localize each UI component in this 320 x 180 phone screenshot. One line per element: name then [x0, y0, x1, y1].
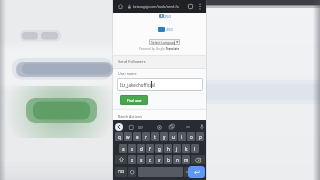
button[interactable]: r	[142, 132, 150, 141]
button[interactable]: u	[169, 132, 177, 141]
button[interactable]: c	[146, 155, 154, 164]
staticText: a	[122, 146, 125, 152]
staticText: s	[131, 146, 134, 152]
button[interactable]	[186, 126, 190, 128]
staticText: Find user	[127, 98, 142, 103]
button[interactable]: d	[137, 144, 145, 153]
staticText: d	[140, 146, 143, 152]
staticText: j	[176, 146, 178, 152]
button[interactable]: w	[124, 132, 132, 141]
staticText: x	[140, 157, 143, 163]
staticText: n	[176, 157, 179, 163]
staticText: f	[149, 146, 151, 152]
staticText: ?123	[118, 170, 125, 174]
button[interactable]: v	[155, 155, 163, 164]
staticText: u	[172, 134, 175, 140]
staticText: Select Language	[151, 40, 175, 45]
button[interactable]	[157, 125, 162, 130]
button[interactable]: n	[173, 155, 181, 164]
button[interactable]: g	[155, 144, 163, 153]
button[interactable]: Select Language	[149, 39, 180, 45]
staticText: Powered by	[139, 47, 156, 51]
button[interactable]	[191, 155, 205, 164]
button[interactable]: f	[146, 144, 154, 153]
staticText: m	[184, 157, 189, 163]
staticText: c	[149, 157, 152, 163]
button[interactable]: m	[182, 155, 190, 164]
button[interactable]: h	[164, 144, 172, 153]
button[interactable]	[129, 125, 134, 130]
button[interactable]: ?123	[115, 167, 127, 177]
staticText: q	[118, 134, 121, 140]
button[interactable]: q	[115, 132, 123, 141]
button[interactable]: Find user	[120, 95, 148, 105]
staticText: b	[167, 157, 170, 163]
staticText: i	[181, 134, 183, 140]
button[interactable]: t	[151, 132, 159, 141]
button[interactable]: e	[133, 132, 141, 141]
button[interactable]: y	[160, 132, 168, 141]
button[interactable]: s	[128, 144, 136, 153]
staticText: GIF	[138, 126, 144, 130]
button[interactable]	[115, 123, 123, 131]
staticText: Translate	[165, 47, 180, 51]
button[interactable]: t	[159, 14, 164, 18]
button[interactable]: i	[178, 132, 186, 141]
staticText: h	[167, 146, 170, 152]
button[interactable]	[188, 4, 193, 9]
staticText: Batch Actions	[118, 114, 143, 119]
staticText: Go gle	[156, 47, 165, 51]
staticText: t	[161, 14, 163, 18]
staticText: o	[190, 134, 193, 140]
staticText: w	[126, 134, 130, 140]
button[interactable]: j	[173, 144, 181, 153]
button[interactable]	[128, 167, 136, 177]
staticText: z	[131, 157, 134, 163]
button[interactable]	[199, 3, 201, 10]
staticText: 250	[166, 27, 173, 32]
button[interactable]	[184, 167, 189, 177]
button[interactable]: p	[196, 132, 204, 141]
button[interactable]: o	[187, 132, 195, 141]
staticText: y	[163, 134, 166, 140]
staticText: l	[194, 146, 196, 152]
staticText: t	[154, 134, 156, 140]
button[interactable]: l	[191, 144, 199, 153]
button[interactable]	[158, 27, 165, 32]
staticText: p	[199, 134, 202, 140]
staticText: 250	[164, 14, 171, 18]
staticText: r	[145, 134, 147, 140]
button[interactable]: x	[137, 155, 145, 164]
staticText: Send Followers	[118, 59, 146, 64]
staticText: v	[158, 157, 161, 163]
button[interactable]: Itz_jakechofficial	[117, 78, 203, 91]
staticText: Itz_jakechofficial	[120, 82, 155, 88]
staticText: k	[185, 146, 188, 152]
button[interactable]: z	[128, 155, 136, 164]
button[interactable]: k	[182, 144, 190, 153]
staticText: keiszagigi.com/tools/send-fo	[133, 4, 179, 9]
button[interactable]: a	[119, 144, 127, 153]
button[interactable]	[118, 4, 123, 9]
button[interactable]	[188, 166, 205, 178]
button[interactable]: b	[164, 155, 172, 164]
button[interactable]	[115, 155, 127, 164]
staticText: User name	[118, 71, 137, 76]
staticText: g	[158, 146, 161, 152]
staticText: e	[136, 134, 139, 140]
button[interactable]	[169, 124, 175, 130]
button[interactable]	[200, 124, 204, 130]
